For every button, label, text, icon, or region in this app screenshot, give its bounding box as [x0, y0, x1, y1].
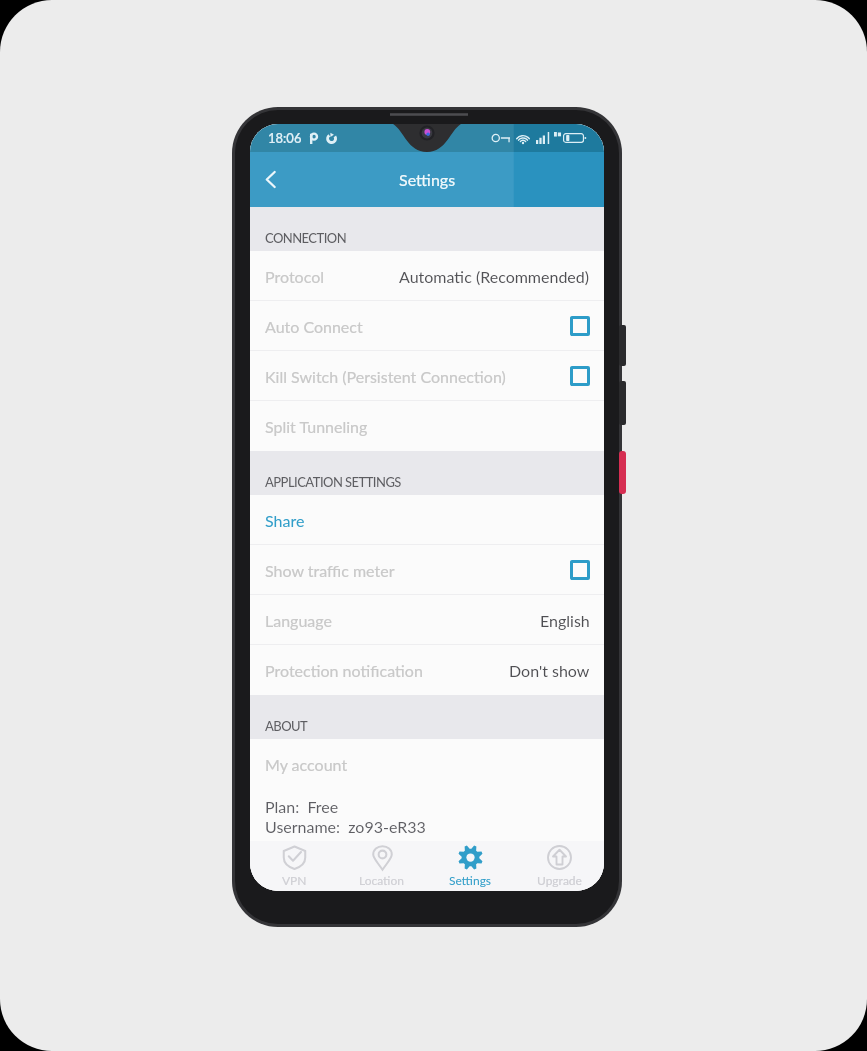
button[interactable]: VPN — [250, 841, 338, 891]
staticText: CONNECTION — [265, 230, 347, 246]
staticText: VPN — [282, 873, 307, 887]
staticText: Split Tunneling — [265, 417, 368, 436]
staticText: Share — [265, 511, 305, 530]
staticText: My account — [265, 755, 348, 774]
button[interactable]: Share — [250, 495, 604, 545]
staticText: Settings — [449, 873, 492, 887]
button[interactable]: Upgrade — [515, 841, 604, 891]
button[interactable]: Split Tunneling — [250, 401, 604, 451]
button[interactable]: Language — [250, 595, 604, 645]
button[interactable]: Protocol — [250, 251, 604, 301]
staticText: Plan: Free — [265, 797, 339, 816]
staticText: APPLICATION SETTINGS — [265, 474, 401, 490]
button[interactable]: Auto Connect — [250, 301, 604, 351]
staticText: Don't show — [509, 661, 590, 680]
staticText: Show traffic meter — [265, 561, 395, 580]
button[interactable]: Settings — [426, 841, 515, 891]
staticText: Automatic (Recommended) — [399, 267, 590, 286]
staticText: Settings — [399, 170, 456, 189]
button[interactable]: Show traffic meter — [250, 545, 604, 595]
staticText: 18:06 — [268, 130, 302, 146]
staticText: Protection notification — [265, 661, 423, 680]
button[interactable]: My account — [250, 739, 604, 789]
button[interactable]: Kill Switch (Persistent Connection) — [250, 351, 604, 401]
staticText: Language — [265, 611, 332, 630]
staticText: Upgrade — [537, 873, 582, 887]
staticText: Location — [359, 873, 405, 887]
staticText: Auto Connect — [265, 317, 363, 336]
button[interactable]: Location — [338, 841, 426, 891]
staticText: Username: zo93-eR33 — [265, 817, 426, 836]
staticText: ABOUT — [265, 718, 308, 734]
staticText: Kill Switch (Persistent Connection) — [265, 367, 506, 386]
staticText: Protocol — [265, 267, 324, 286]
button[interactable]: Back — [250, 152, 290, 207]
staticText: English — [540, 611, 590, 630]
button[interactable]: Protection notification — [250, 645, 604, 695]
